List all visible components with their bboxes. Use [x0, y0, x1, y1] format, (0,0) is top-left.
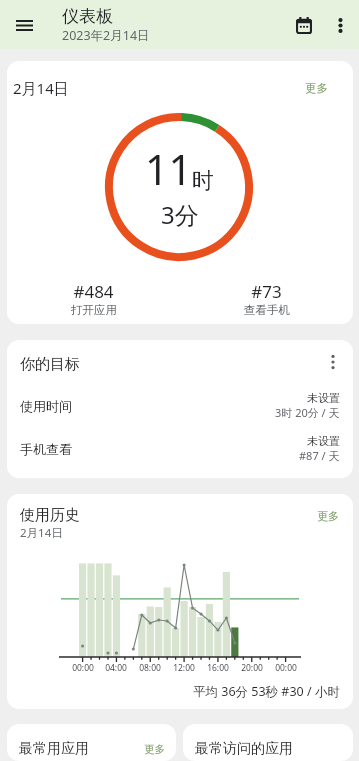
staticText: 2023年2月14日 [62, 27, 150, 44]
staticText: 仪表板 [62, 6, 113, 27]
staticText: 你的目标 [20, 355, 80, 374]
staticText: 11 [145, 141, 192, 197]
staticText: 使用时间 [20, 398, 72, 414]
staticText: 手机查看 [20, 441, 72, 457]
staticText: 最常用应用 [19, 740, 89, 758]
staticText: 2月14日 [20, 525, 63, 541]
staticText: 00:00 [275, 662, 297, 674]
staticText: 20:00 [241, 662, 263, 674]
button[interactable]: #484 [7, 280, 180, 317]
staticText: 更多 [305, 81, 328, 95]
staticText: 04:00 [105, 662, 127, 674]
button[interactable]: Calendar [286, 7, 322, 43]
staticText: 查看手机 [244, 303, 290, 317]
staticText: 未设置 [307, 391, 340, 405]
button[interactable]: Goal options [316, 345, 350, 379]
staticText: 平均 36分 53秒 #30 / 小时 [193, 683, 340, 700]
button[interactable]: 更多 [314, 507, 342, 525]
staticText: 08:00 [139, 662, 161, 674]
staticText: 使用历史 [20, 506, 80, 525]
button[interactable]: 最常用应用 [7, 724, 176, 758]
staticText: 3时 20分 / 天 [275, 405, 340, 420]
staticText: 16:00 [207, 662, 229, 674]
staticText: 3分 [161, 198, 199, 231]
button[interactable]: 使用时间 [7, 391, 353, 420]
staticText: #73 [251, 280, 282, 303]
button[interactable]: #73 [180, 280, 353, 317]
staticText: 00:00 [72, 662, 94, 674]
staticText: 时 [192, 167, 214, 195]
button[interactable]: 手机查看 [7, 434, 353, 463]
button[interactable]: 更多 [301, 78, 332, 98]
staticText: 更多 [144, 743, 165, 756]
staticText: 未设置 [307, 434, 340, 448]
staticText: 最常访问的应用 [195, 740, 293, 758]
staticText: 打开应用 [71, 303, 117, 317]
staticText: 2月14日 [13, 78, 69, 98]
button[interactable]: 最常访问的应用 [183, 724, 353, 758]
staticText: 更多 [317, 509, 339, 523]
button[interactable]: Menu [4, 5, 44, 45]
staticText: 12:00 [173, 662, 195, 674]
button[interactable]: More options [322, 7, 358, 43]
staticText: #484 [73, 280, 114, 303]
staticText: #87 / 天 [299, 448, 340, 463]
